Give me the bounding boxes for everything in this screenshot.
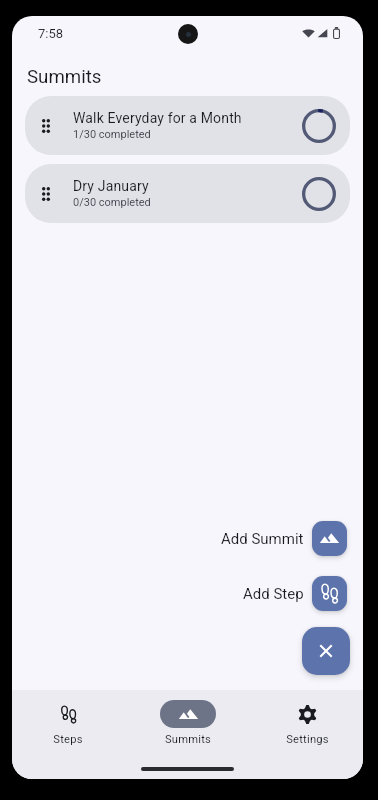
staticText: Add Step bbox=[243, 585, 304, 603]
button[interactable]: Add Step bbox=[312, 576, 347, 611]
staticText: 1/30 completed bbox=[73, 128, 151, 141]
staticText: 7:58 bbox=[38, 26, 64, 41]
button[interactable]: Settings bbox=[279, 700, 335, 746]
staticText: Dry January bbox=[73, 178, 149, 194]
button[interactable]: Steps bbox=[40, 700, 96, 746]
button[interactable]: Add Summit bbox=[312, 521, 347, 556]
button[interactable]: Walk Everyday for a Month bbox=[25, 96, 350, 155]
staticText: 0/30 completed bbox=[73, 196, 151, 209]
button[interactable]: Close menu bbox=[302, 627, 350, 675]
staticText: Steps bbox=[53, 733, 83, 746]
staticText: Walk Everyday for a Month bbox=[73, 110, 242, 126]
staticText: Add Summit bbox=[221, 530, 304, 548]
staticText: Summits bbox=[165, 733, 211, 746]
button[interactable]: Summits bbox=[160, 700, 216, 746]
button[interactable]: Dry January bbox=[25, 164, 350, 223]
staticText: Summits bbox=[27, 66, 102, 88]
staticText: Settings bbox=[286, 733, 329, 746]
